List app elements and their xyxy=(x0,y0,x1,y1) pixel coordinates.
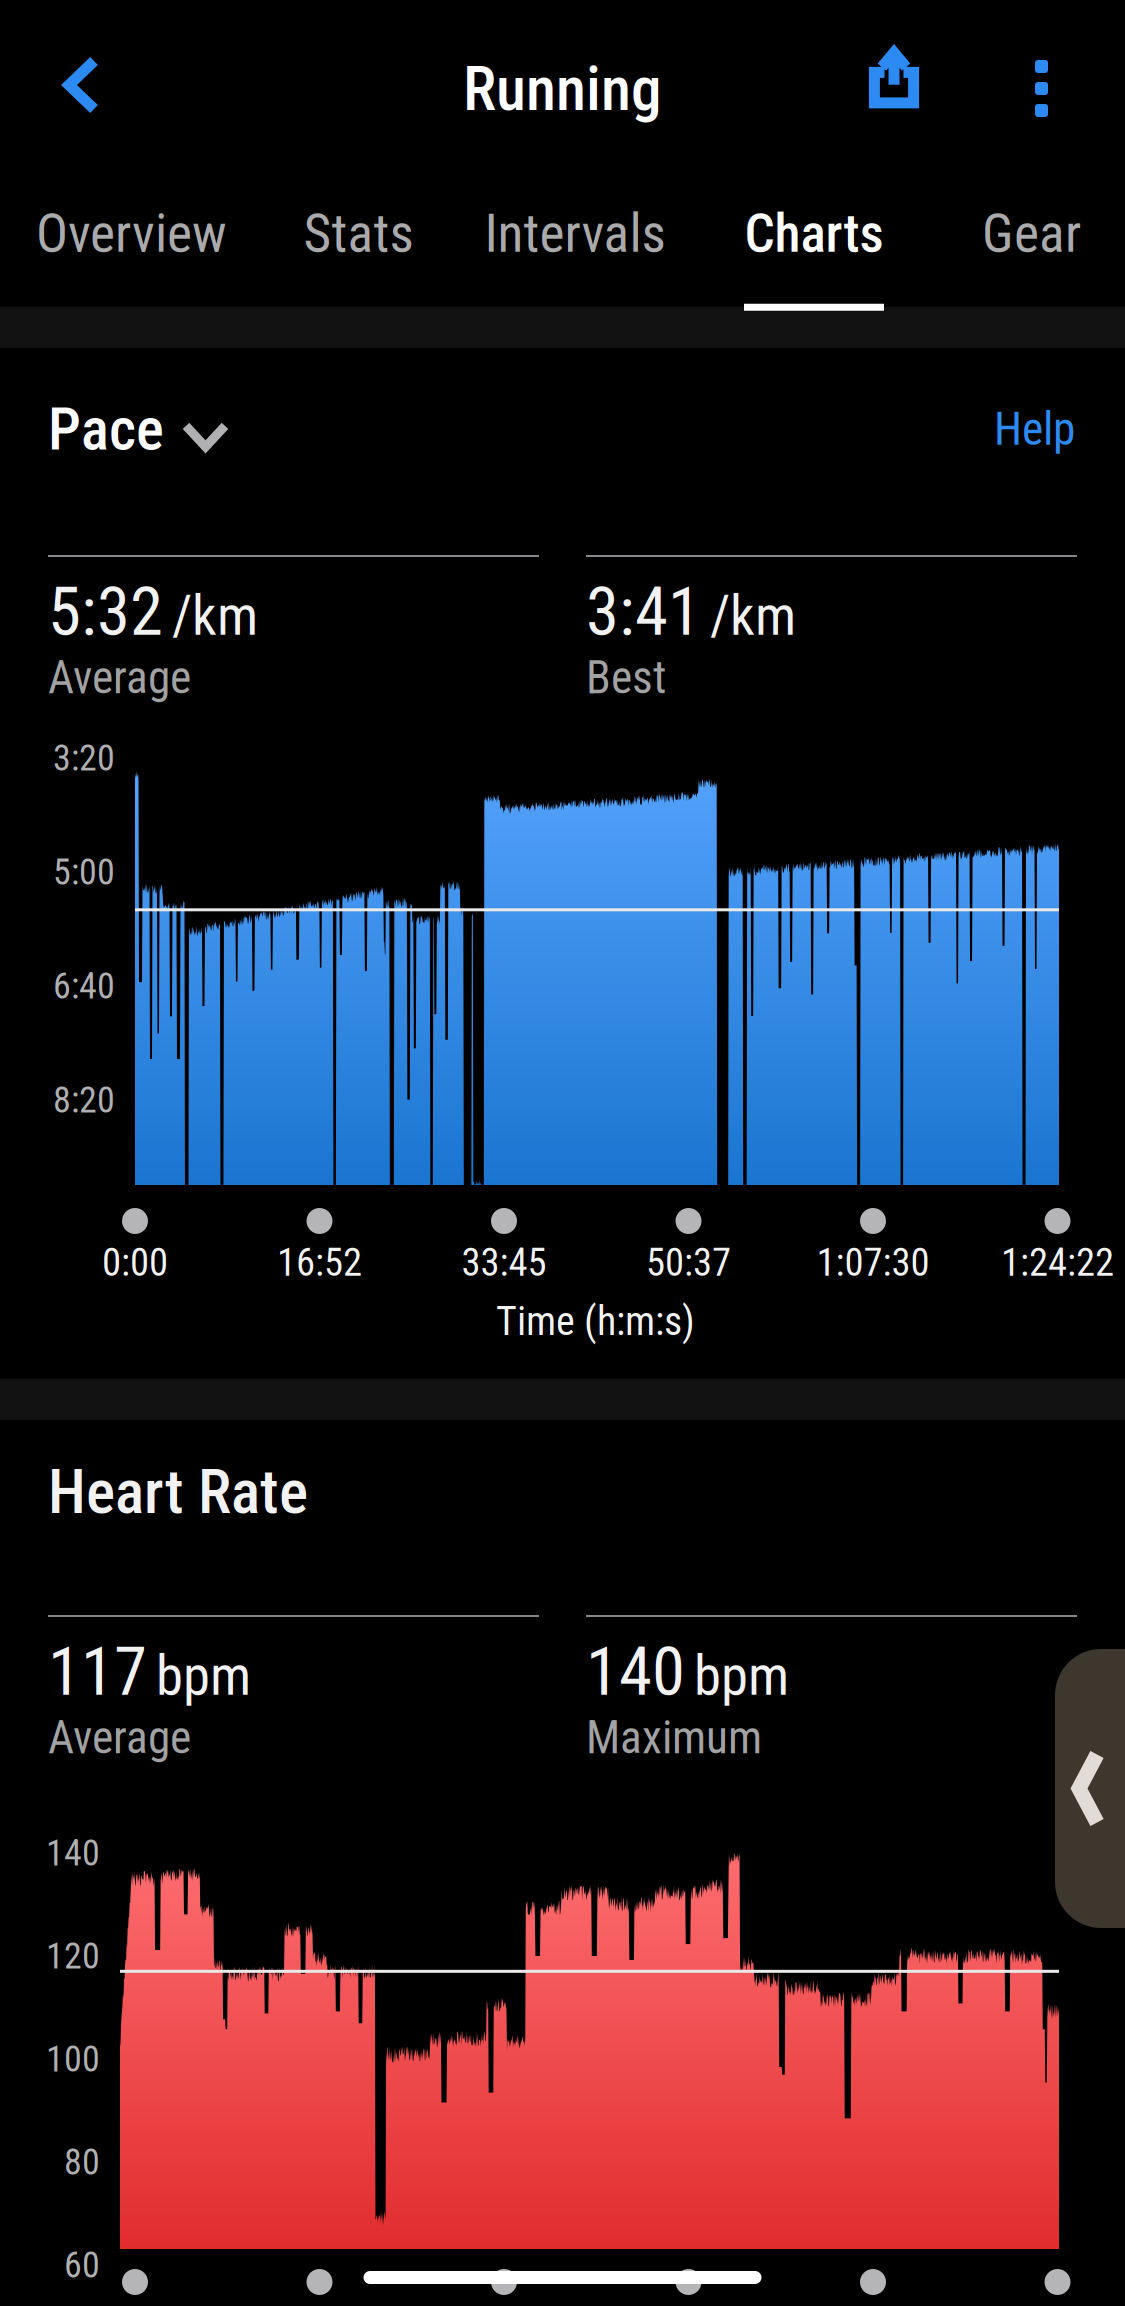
staticText: 3:20 xyxy=(53,737,115,779)
staticText: 117 xyxy=(48,1633,147,1711)
button[interactable]: More options xyxy=(993,0,1090,177)
staticText: 5:00 xyxy=(53,851,115,893)
staticText: /km xyxy=(710,584,796,648)
staticText: 6:40 xyxy=(53,965,115,1007)
staticText: 140 xyxy=(586,1633,685,1711)
staticText: 1:24:22 xyxy=(1001,1240,1114,1285)
staticText: Pace xyxy=(48,395,164,464)
staticText: Average xyxy=(48,1711,191,1764)
staticText: 80 xyxy=(64,2141,100,2183)
staticText: 8:20 xyxy=(53,1079,115,1121)
staticText: 60 xyxy=(64,2244,100,2286)
staticText: Help xyxy=(994,403,1075,456)
staticText: Gear xyxy=(982,202,1081,265)
staticText: Overview xyxy=(36,202,227,265)
staticText: 140 xyxy=(46,1832,100,1874)
staticText: 100 xyxy=(46,2038,100,2080)
staticText: Heart Rate xyxy=(48,1456,308,1528)
staticText: 120 xyxy=(46,1935,100,1977)
staticText: Running xyxy=(463,53,662,125)
staticText: Stats xyxy=(303,202,413,265)
staticText: 16:52 xyxy=(277,1240,362,1285)
button[interactable]: Help xyxy=(994,389,1075,470)
button[interactable]: Gear xyxy=(983,172,1080,307)
staticText: Charts xyxy=(744,202,883,265)
button[interactable]: Back xyxy=(0,0,152,170)
staticText: 0:00 xyxy=(102,1240,168,1285)
staticText: 1:07:30 xyxy=(816,1240,929,1285)
staticText: /km xyxy=(172,584,258,648)
button[interactable]: Pace xyxy=(48,381,225,478)
staticText: 3:41 xyxy=(586,573,701,651)
staticText: Intervals xyxy=(484,202,665,265)
staticText: Best xyxy=(586,651,666,704)
button[interactable]: Share xyxy=(831,0,957,156)
button[interactable]: Intervals xyxy=(487,172,663,307)
button[interactable]: Stats xyxy=(307,172,410,307)
staticText: 5:32 xyxy=(48,573,163,651)
staticText: Maximum xyxy=(586,1711,762,1764)
button[interactable]: Overview xyxy=(37,172,226,307)
staticText: Time (h:m:s) xyxy=(496,1298,695,1345)
staticText: 33:45 xyxy=(461,1240,546,1285)
button[interactable]: Charts xyxy=(744,172,884,307)
staticText: Average xyxy=(48,651,191,704)
staticText: bpm xyxy=(694,1644,789,1708)
staticText: 50:37 xyxy=(646,1240,731,1285)
staticText: bpm xyxy=(156,1644,251,1708)
button[interactable]: Show panel xyxy=(1055,1649,1125,1928)
